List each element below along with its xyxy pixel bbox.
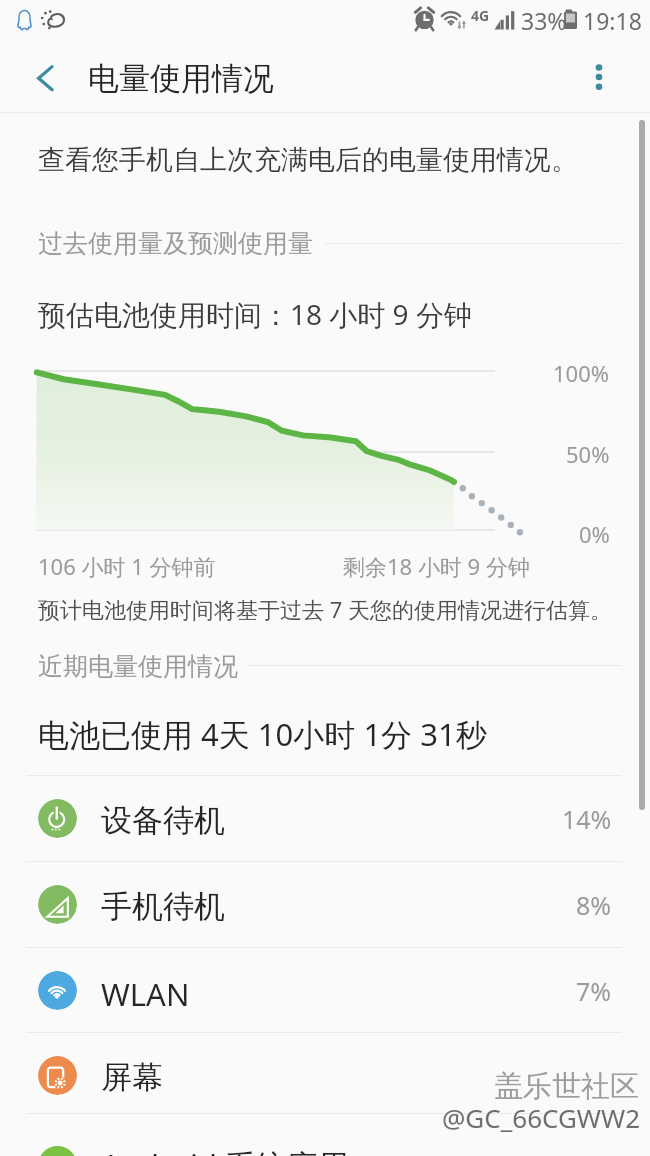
staticText: 19:18 [583, 5, 642, 36]
staticText: 剩余18 小时 9 分钟 [343, 551, 530, 581]
staticText: 7% [576, 974, 612, 1008]
staticText: 50% [566, 439, 610, 469]
staticText: 近期电量使用情况 [38, 651, 238, 682]
staticText: 预估电池使用时间：18 小时 9 分钟 [38, 295, 472, 333]
button[interactable]: More options [568, 44, 630, 112]
staticText: 盖乐世社区 [494, 1068, 639, 1105]
staticText: 屏幕 [101, 1058, 163, 1097]
staticText: 8% [576, 888, 612, 922]
staticText: 14% [562, 802, 612, 836]
staticText: 0% [579, 519, 610, 549]
staticText: 查看您手机自上次充满电后的电量使用情况。 [38, 143, 578, 177]
staticText: Android 系统应用 [101, 1144, 350, 1156]
staticText: 33% [521, 5, 567, 36]
staticText: WLAN [101, 973, 190, 1015]
button[interactable]: WLAN [0, 948, 650, 1034]
staticText: @GC_66CGWW2 [442, 1100, 641, 1135]
button[interactable]: 屏幕 [0, 1033, 650, 1119]
button[interactable]: 手机待机 [0, 862, 650, 948]
button[interactable]: Android 系统应用 [0, 1114, 650, 1156]
staticText: 手机待机 [101, 887, 225, 926]
button[interactable]: Back [14, 44, 72, 112]
staticText: 电量使用情况 [88, 59, 274, 98]
button[interactable]: 设备待机 [0, 776, 650, 862]
staticText: 106 小时 1 分钟前 [38, 551, 216, 581]
staticText: 设备待机 [101, 801, 225, 840]
staticText: 预计电池使用时间将基于过去 7 天您的使用情况进行估算。 [38, 594, 613, 624]
staticText: 100% [553, 358, 610, 388]
staticText: 4G [471, 6, 490, 25]
staticText: 过去使用量及预测使用量 [38, 228, 313, 259]
staticText: 电池已使用 4天 10小时 1分 31秒 [38, 713, 487, 755]
